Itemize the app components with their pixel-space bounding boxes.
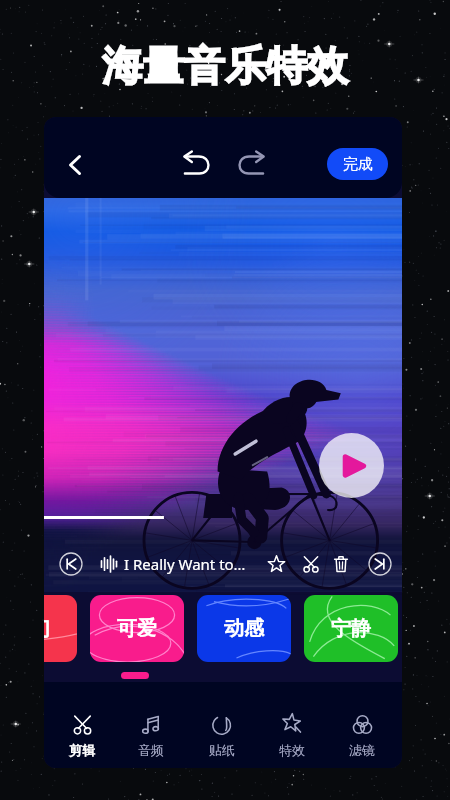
- button[interactable]: 魔幻: [44, 595, 77, 662]
- staticText: 剪辑: [69, 742, 95, 758]
- button[interactable]: 特效: [262, 714, 322, 760]
- staticText: 魔幻: [44, 616, 50, 641]
- staticText: I Really Want to…: [124, 554, 246, 574]
- button[interactable]: 完成: [327, 148, 388, 180]
- button[interactable]: Delete: [328, 551, 354, 577]
- staticText: 音频: [138, 742, 164, 758]
- staticText: 动感: [224, 616, 264, 641]
- button[interactable]: 动感: [197, 595, 291, 662]
- staticText: 滤镜: [349, 742, 375, 758]
- button[interactable]: 滤镜: [332, 714, 392, 760]
- button[interactable]: Cut: [298, 551, 324, 577]
- staticText: 可爱: [117, 616, 157, 641]
- button[interactable]: 宁静: [304, 595, 398, 662]
- staticText: 海量音乐特效: [102, 41, 348, 93]
- button[interactable]: Undo: [176, 143, 216, 183]
- button[interactable]: 可爱: [90, 595, 184, 662]
- button[interactable]: 音频: [121, 714, 181, 760]
- button[interactable]: Favorite: [263, 551, 289, 577]
- button[interactable]: Play: [319, 433, 384, 498]
- button[interactable]: 贴纸: [192, 714, 252, 760]
- staticText: 特效: [279, 742, 305, 758]
- button[interactable]: 剪辑: [52, 714, 112, 760]
- button[interactable]: Back: [53, 143, 97, 187]
- staticText: 贴纸: [209, 742, 235, 758]
- staticText: 宁静: [331, 616, 371, 641]
- staticText: 完成: [343, 155, 373, 174]
- button[interactable]: I Really Want to…: [124, 542, 259, 586]
- button[interactable]: Next clip: [367, 551, 393, 577]
- button[interactable]: Redo: [231, 143, 271, 183]
- button[interactable]: Previous clip: [58, 551, 84, 577]
